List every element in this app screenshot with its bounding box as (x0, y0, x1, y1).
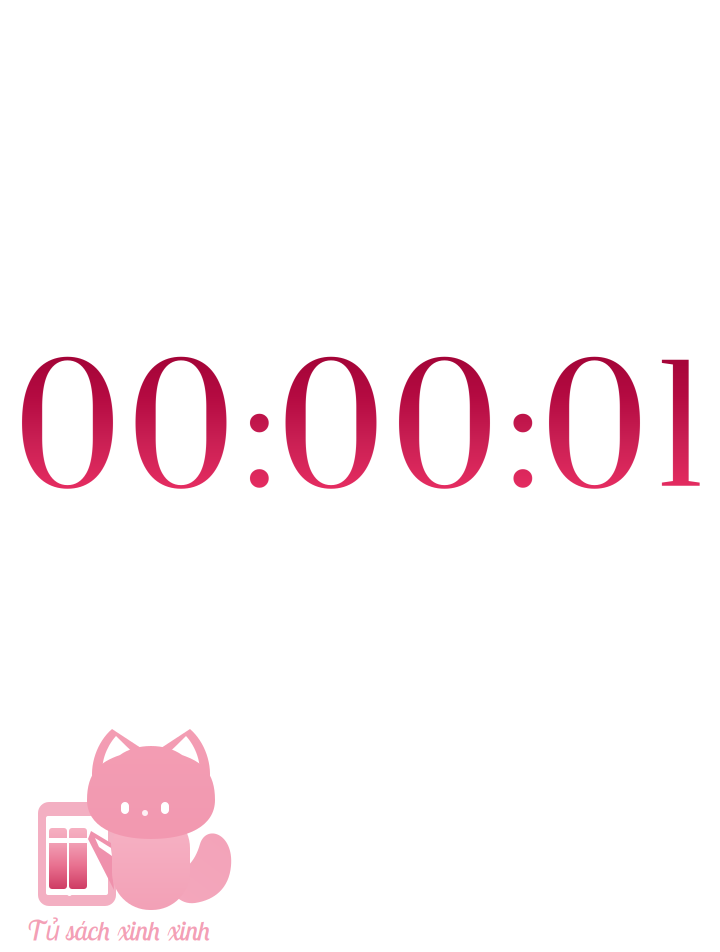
staticText: Tủ sách xinh xinh (27, 912, 211, 948)
